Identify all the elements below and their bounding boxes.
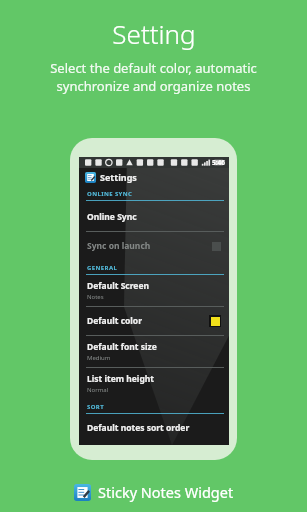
staticText: Sync on launch <box>87 240 151 252</box>
button[interactable]: Default notes sort order <box>79 414 229 442</box>
staticText: Online Sync <box>87 211 137 223</box>
staticText: GENERAL <box>87 264 118 272</box>
staticText: ONLINE SYNC <box>87 190 133 198</box>
button[interactable]: Default font size <box>79 336 229 367</box>
button[interactable]: Sticky Notes Widget icon <box>70 480 238 504</box>
staticText: Select the default color, automatic <box>0 59 307 77</box>
staticText: Notes <box>87 293 104 301</box>
staticText: SORT <box>87 403 105 411</box>
staticText: 5:46 <box>212 158 225 167</box>
staticText: Settings <box>100 171 137 183</box>
button[interactable]: List item height <box>79 368 229 399</box>
button[interactable]: Online Sync <box>79 203 229 231</box>
staticText: Medium <box>87 354 111 362</box>
staticText: List item height <box>87 373 154 385</box>
staticText: Sticky Notes Widget <box>98 482 234 502</box>
staticText: Default font size <box>87 341 157 353</box>
staticText: Default color <box>87 315 142 327</box>
staticText: Setting <box>112 16 196 51</box>
staticText: Default notes sort order <box>87 422 190 434</box>
button[interactable]: Settings <box>79 168 229 186</box>
staticText: Normal <box>87 386 109 394</box>
button[interactable]: Default color <box>79 307 229 335</box>
button[interactable]: Sync on launch <box>79 232 229 260</box>
staticText: synchronize and organize notes <box>0 77 307 95</box>
staticText: Default Screen <box>87 280 150 292</box>
button[interactable]: Default Screen <box>79 275 229 306</box>
other: Sticky Notes Widget icon <box>74 484 91 501</box>
